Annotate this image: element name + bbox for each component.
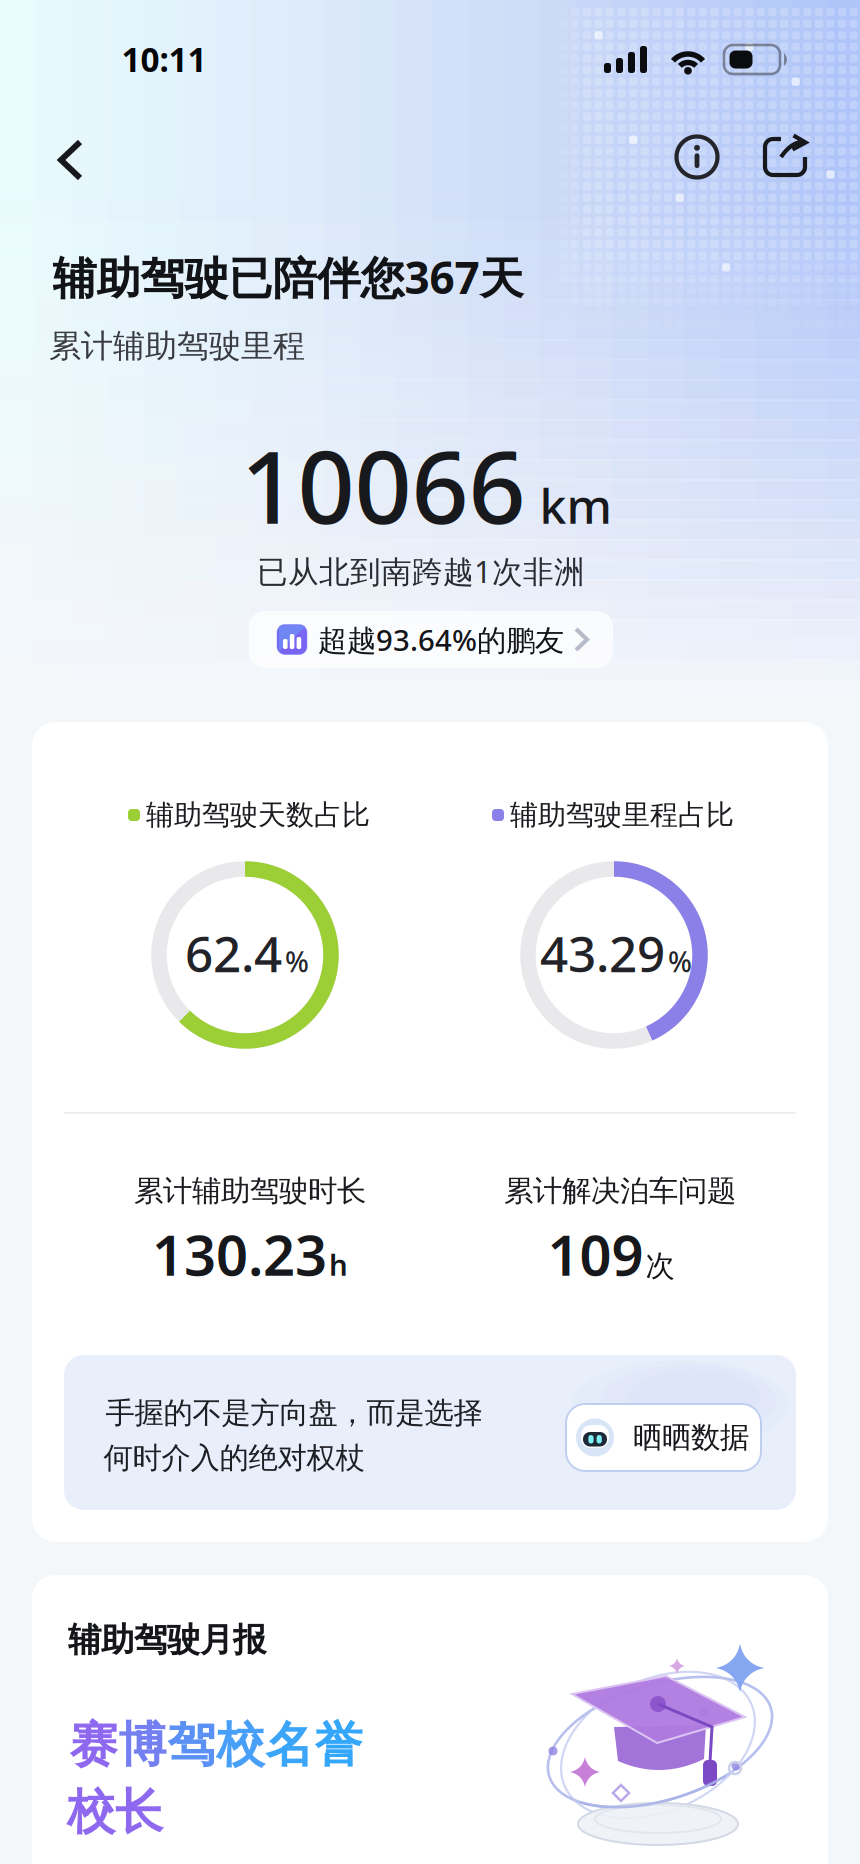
staticText: 辅助驾驶已陪伴您367天 [52, 248, 523, 306]
button[interactable]: Info [674, 134, 720, 180]
staticText: 62.4 [185, 920, 282, 986]
staticText: 博 [118, 1715, 166, 1774]
staticText: 誉 [314, 1715, 362, 1774]
staticText: 校 [216, 1715, 264, 1774]
staticText: 辅助驾驶天数占比 [146, 798, 370, 832]
button[interactable]: 晒晒数据 [565, 1403, 762, 1472]
staticText: 辅助驾驶里程占比 [510, 798, 734, 832]
staticText: 赛 [69, 1715, 117, 1774]
staticText: 何时介入的绝对权杖 [103, 1440, 364, 1476]
staticText: h [329, 1245, 348, 1284]
staticText: 校长 [67, 1782, 163, 1841]
staticText: 累计辅助驾驶时长 [134, 1173, 366, 1209]
staticText: 名 [265, 1715, 313, 1774]
staticText: % [285, 943, 309, 980]
staticText: 10:11 [121, 37, 206, 81]
staticText: km [539, 473, 611, 537]
button[interactable]: 辅助驾驶月报 [32, 1575, 828, 1864]
staticText: % [668, 943, 692, 980]
button[interactable]: Back [49, 139, 93, 183]
staticText: 晒晒数据 [633, 1419, 749, 1455]
staticText: 109 [547, 1217, 643, 1291]
staticText: 辅助驾驶月报 [68, 1619, 266, 1660]
staticText: 已从北到南跨越1次非洲 [257, 551, 585, 591]
staticText: 10066 [240, 419, 525, 551]
button[interactable]: 超越93.64%的鹏友 [249, 611, 613, 668]
staticText: 驾 [167, 1715, 215, 1774]
staticText: 累计辅助驾驶里程 [49, 326, 305, 366]
staticText: 手握的不是方向盘，而是选择 [105, 1395, 482, 1431]
staticText: 超越93.64%的鹏友 [318, 620, 564, 659]
staticText: 130.23 [152, 1217, 327, 1291]
button[interactable]: Share [764, 135, 808, 179]
staticText: 次 [645, 1248, 674, 1284]
staticText: 累计解决泊车问题 [504, 1173, 736, 1209]
staticText: 43.29 [540, 920, 665, 986]
